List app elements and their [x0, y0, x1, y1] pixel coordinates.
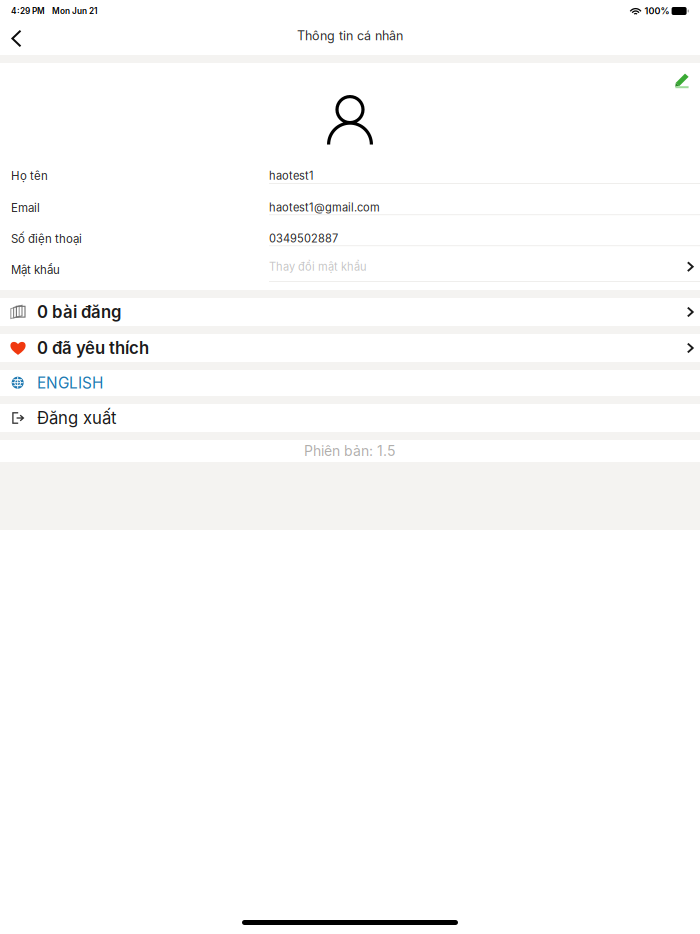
- staticText: Email: [11, 201, 40, 215]
- staticText: Đăng xuất: [37, 408, 116, 428]
- button[interactable]: Back: [0, 22, 44, 55]
- staticText: Thông tin cá nhân: [297, 28, 403, 43]
- staticText: ENGLISH: [37, 374, 103, 392]
- staticText: Phiên bản: 1.5: [304, 442, 396, 459]
- staticText: Họ tên: [11, 169, 48, 183]
- staticText: haotest1: [269, 169, 314, 182]
- button[interactable]: ENGLISH: [0, 370, 700, 396]
- staticText: 0349502887: [269, 232, 338, 245]
- staticText: 0 đã yêu thích: [37, 338, 149, 358]
- staticText: Mật khẩu: [11, 263, 60, 277]
- staticText: Mon Jun 21: [52, 6, 97, 16]
- staticText: 0 bài đăng: [37, 302, 121, 322]
- staticText: Số điện thoại: [11, 232, 82, 246]
- button[interactable]: Edit profile: [665, 63, 699, 98]
- button[interactable]: 0 bài đăng: [0, 298, 700, 326]
- button[interactable]: 0 đã yêu thích: [0, 334, 700, 362]
- staticText: 4:29 PM: [11, 6, 45, 16]
- button[interactable]: Đăng xuất: [0, 404, 700, 432]
- staticText: haotest1@gmail.com: [269, 201, 380, 214]
- staticText: Thay đổi mật khẩu: [269, 260, 367, 273]
- staticText: 100%: [645, 5, 670, 16]
